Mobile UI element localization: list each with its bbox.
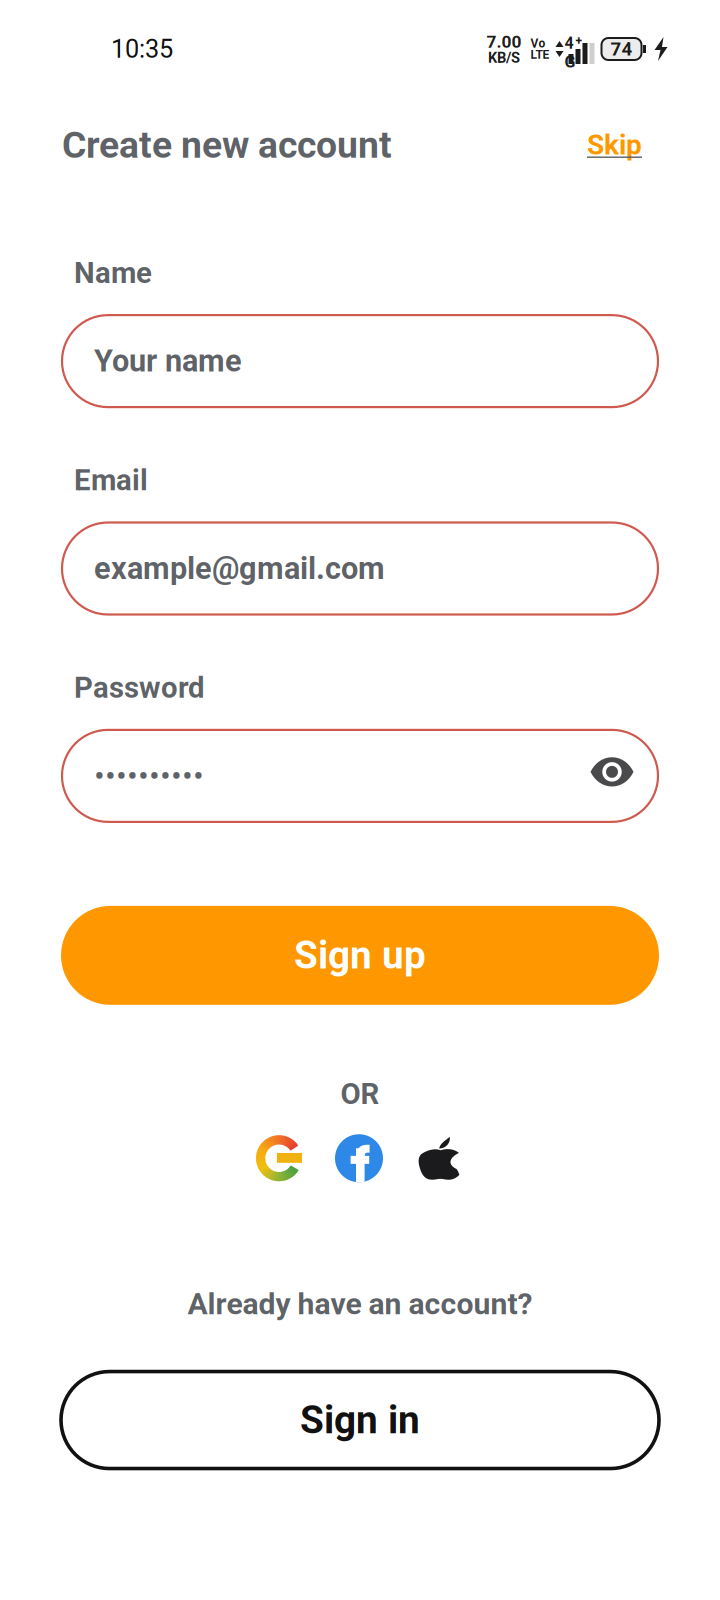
- button[interactable]: Continue with Google: [256, 1135, 302, 1181]
- staticText: Create new account: [62, 123, 392, 167]
- staticText: example@gmail.com: [94, 550, 385, 586]
- button[interactable]: Continue with Apple: [416, 1134, 464, 1182]
- staticText: 4G: [564, 34, 575, 71]
- staticText: Your name: [94, 343, 242, 379]
- staticText: Sign up: [294, 933, 426, 978]
- staticText: +: [575, 34, 582, 48]
- staticText: Already have an account?: [187, 1286, 532, 1321]
- button[interactable]: Sign up: [61, 906, 659, 1005]
- staticText: Email: [74, 463, 148, 497]
- staticText: OR: [340, 1077, 379, 1111]
- staticText: ••••••••••: [94, 757, 204, 795]
- button[interactable]: Skip: [587, 128, 642, 161]
- staticText: Vo: [530, 36, 545, 50]
- staticText: 74: [610, 38, 632, 60]
- staticText: LTE: [530, 47, 549, 62]
- staticText: Sign in: [300, 1397, 420, 1443]
- staticText: Password: [74, 670, 205, 705]
- staticText: Name: [74, 256, 152, 290]
- staticText: KB/S: [488, 49, 520, 66]
- button[interactable]: Show password: [590, 757, 634, 787]
- button[interactable]: Continue with Facebook: [335, 1134, 383, 1182]
- staticText: 7.00: [486, 32, 521, 52]
- button[interactable]: Sign in: [61, 1372, 659, 1469]
- staticText: Skip: [587, 128, 642, 161]
- staticText: 10:35: [111, 34, 173, 64]
